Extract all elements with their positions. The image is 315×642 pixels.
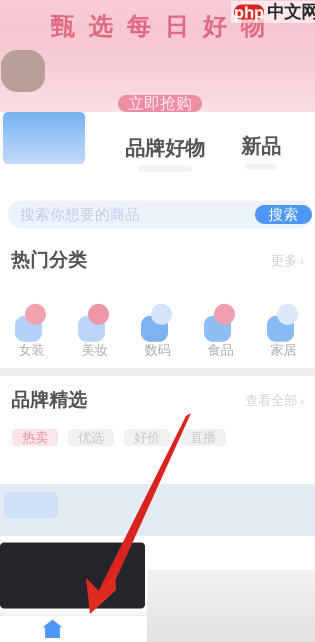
- button[interactable]: 美妆: [63, 298, 126, 358]
- button[interactable]: Video: [0, 542, 145, 608]
- button[interactable]: 好价: [124, 429, 170, 446]
- staticText: 查看全部 ›: [245, 391, 304, 409]
- button[interactable]: 品牌好物: [125, 136, 205, 172]
- staticText: 直播: [190, 429, 216, 446]
- button[interactable]: 食品: [189, 298, 252, 358]
- staticText: 家居: [270, 342, 296, 358]
- staticText: 立即抢购: [128, 94, 192, 113]
- button[interactable]: 热卖: [12, 429, 58, 446]
- button[interactable]: 女装: [0, 298, 63, 358]
- staticText: 品牌好物: [125, 136, 205, 161]
- staticText: php: [234, 1, 264, 23]
- button[interactable]: 立即抢购: [118, 95, 202, 112]
- button[interactable]: 家居: [252, 298, 315, 358]
- staticText: 搜索: [268, 205, 298, 223]
- staticText: 品牌精选: [11, 388, 87, 411]
- staticText: 新品: [241, 134, 281, 159]
- button[interactable]: 查看全部 ›: [245, 391, 304, 409]
- button[interactable]: Categories: [105, 618, 210, 638]
- button[interactable]: 优选: [68, 429, 114, 446]
- staticText: 搜索你想要的商品: [20, 205, 140, 223]
- staticText: 数码: [144, 342, 170, 358]
- button[interactable]: 数码: [126, 298, 189, 358]
- staticText: 优选: [78, 429, 104, 446]
- button[interactable]: 更多 ›: [271, 251, 304, 269]
- staticText: 食品: [207, 342, 233, 358]
- staticText: 女装: [18, 342, 44, 358]
- button[interactable]: 搜索: [255, 205, 312, 224]
- staticText: 热门分类: [11, 248, 87, 271]
- button[interactable]: 直播: [180, 429, 226, 446]
- staticText: 美妆: [81, 342, 107, 358]
- staticText: 更多 ›: [271, 251, 304, 269]
- staticText: 好价: [134, 429, 160, 446]
- button[interactable]: 搜索你想要的商品: [8, 200, 312, 228]
- button[interactable]: 新品: [241, 134, 281, 170]
- staticText: 热卖: [22, 429, 48, 446]
- button[interactable]: Home: [0, 618, 105, 638]
- button[interactable]: Featured banner: [3, 112, 85, 164]
- staticText: 中文网: [267, 1, 315, 23]
- staticText: 甄 选 每 日 好 物: [50, 12, 264, 41]
